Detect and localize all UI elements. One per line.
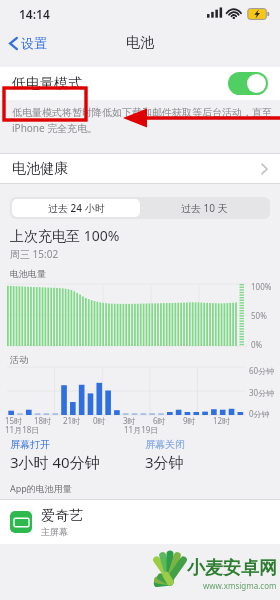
staticText: 3小时 40分钟 [10, 452, 100, 472]
staticText: 小麦安卓网 [187, 557, 277, 580]
staticText: 14:14 [19, 6, 50, 22]
staticText: 电池 [126, 34, 154, 52]
staticText: 0分钟 [249, 408, 270, 419]
staticText: 过去 24 小时 [48, 201, 105, 215]
button[interactable]: 低电量模式 [0, 67, 280, 100]
staticText: 11月18日 [5, 424, 40, 435]
staticText: 电池电量 [10, 268, 46, 279]
staticText: 上次充电至 100% [10, 226, 120, 245]
button[interactable]: Low Power Mode toggle [228, 72, 268, 95]
staticText: App的电池用量 [10, 482, 72, 494]
staticText: 爱奇艺 [41, 507, 83, 525]
staticText: 低电量模式将暂时降低如下载和邮件获取等后台活动，直至 [12, 106, 272, 119]
staticText: 11月19日 [124, 424, 159, 435]
staticText: 0% [251, 339, 263, 350]
staticText: 周三 15:02 [10, 247, 59, 261]
button[interactable]: 设置 [0, 30, 55, 56]
staticText: 50% [251, 310, 267, 321]
button[interactable]: 电池健康 [0, 154, 280, 183]
staticText: 100% [251, 281, 272, 292]
staticText: 18时 [34, 415, 52, 426]
staticText: 3分钟 [145, 452, 184, 472]
staticText: 屏幕关闭 [145, 438, 185, 451]
staticText: 9时 [183, 415, 196, 426]
staticText: 电池健康 [12, 160, 68, 178]
button[interactable]: 爱奇艺 [0, 500, 280, 544]
staticText: iPhone 完全充电。 [12, 121, 98, 135]
staticText: 低电量模式 [12, 75, 82, 93]
staticText: 主屏幕 [41, 526, 68, 537]
button[interactable]: 过去 24 小时 [12, 199, 140, 217]
button[interactable]: 过去 10 天 [140, 199, 268, 217]
staticText: 3时 [123, 415, 136, 426]
staticText: 屏幕打开 [10, 438, 50, 451]
staticText: 15时 [5, 415, 23, 426]
staticText: 0时 [93, 415, 106, 426]
staticText: 12时 [213, 415, 231, 426]
staticText: 6时 [153, 415, 166, 426]
staticText: 设置 [21, 35, 47, 51]
staticText: 活动 [10, 354, 28, 365]
staticText: 30分钟 [249, 387, 275, 398]
staticText: 21时 [63, 415, 81, 426]
staticText: www.xmsigma.com [203, 580, 277, 591]
staticText: 60分钟 [249, 365, 275, 376]
staticText: 过去 10 天 [181, 201, 228, 215]
